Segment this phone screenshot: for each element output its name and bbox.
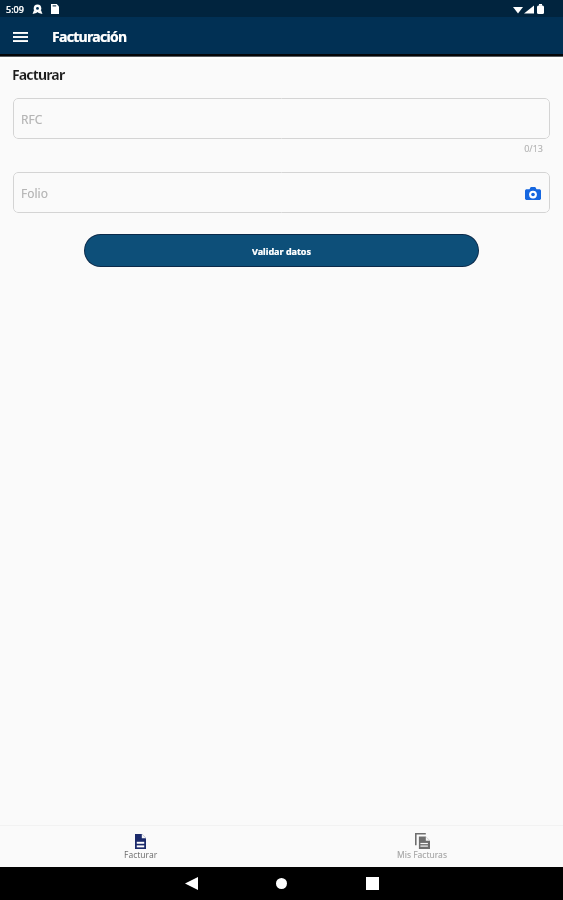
- staticText: Mis Facturas: [397, 849, 447, 861]
- staticText: Facturar: [12, 65, 65, 84]
- staticText: Facturar: [124, 849, 158, 861]
- button[interactable]: Atrás: [179, 871, 204, 896]
- button[interactable]: Facturar: [0, 826, 281, 867]
- button[interactable]: Validar datos: [85, 235, 478, 266]
- staticText: 5:09: [6, 3, 24, 15]
- staticText: 0/13: [0, 142, 543, 154]
- button[interactable]: Recientes: [360, 871, 385, 896]
- button[interactable]: RFC: [13, 98, 550, 139]
- button[interactable]: Abrir menú: [7, 24, 33, 50]
- staticText: RFC: [21, 111, 43, 127]
- button[interactable]: Inicio: [269, 871, 294, 896]
- button[interactable]: Folio: [13, 172, 550, 213]
- staticText: Folio: [21, 185, 48, 201]
- button[interactable]: Mis Facturas: [281, 826, 563, 867]
- button[interactable]: Escanear con cámara: [521, 181, 545, 205]
- staticText: Validar datos: [252, 245, 312, 257]
- staticText: Facturación: [52, 27, 127, 46]
